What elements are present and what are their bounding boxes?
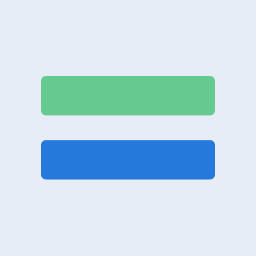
button[interactable]: Secondary action [41,140,215,179]
button[interactable]: Primary action [41,76,215,115]
